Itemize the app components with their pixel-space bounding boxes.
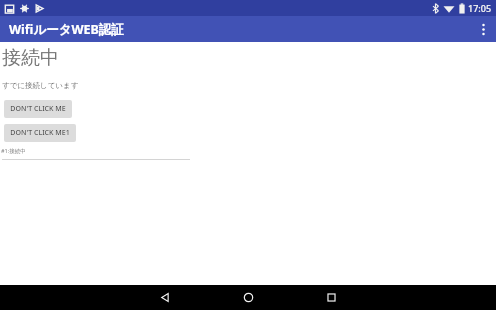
staticText: 17:05 [468, 2, 492, 14]
button[interactable]: Recent apps [314, 285, 348, 310]
button[interactable]: DON'T CLICK ME [4, 100, 72, 118]
staticText: WifiルータWEB認証 [9, 21, 124, 38]
staticText: すでに接続しています [2, 81, 79, 90]
button[interactable]: Back [148, 285, 182, 310]
button[interactable]: DON'T CLICK ME1 [4, 124, 76, 142]
staticText: 接続中 [2, 46, 59, 70]
button[interactable]: More options [470, 16, 496, 42]
staticText: #1:接続中 [1, 147, 26, 155]
staticText: DON'T CLICK ME [10, 104, 66, 114]
staticText: DON'T CLICK ME1 [10, 128, 70, 138]
button[interactable]: Home [231, 285, 265, 310]
